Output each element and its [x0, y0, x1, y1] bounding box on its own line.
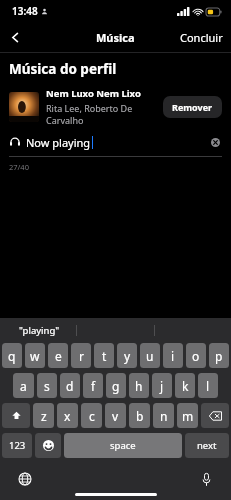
button[interactable]: f — [83, 373, 103, 398]
button[interactable]: x — [57, 403, 78, 428]
button[interactable]: t — [94, 343, 114, 368]
staticText: i — [171, 348, 175, 364]
staticText: z — [41, 408, 47, 424]
button[interactable]: Voice input — [197, 470, 215, 488]
staticText: p — [215, 348, 223, 364]
button[interactable]: z — [33, 403, 54, 428]
button[interactable]: c — [81, 403, 102, 428]
staticText: f — [91, 378, 96, 394]
staticText: c — [89, 408, 95, 424]
button[interactable]: g — [106, 373, 126, 398]
button[interactable]: m — [177, 403, 198, 428]
button[interactable]: a — [13, 373, 34, 398]
staticText: Rita Lee, Roberto De Carvalho — [46, 102, 158, 126]
button[interactable]: d — [60, 373, 80, 398]
staticText: Now playing — [26, 135, 91, 150]
staticText: Nem Luxo Nem Lixo — [46, 87, 141, 100]
button[interactable]: b — [129, 403, 150, 428]
staticText: x — [64, 408, 71, 424]
button[interactable]: r — [71, 343, 91, 368]
staticText: g — [112, 378, 120, 394]
staticText: v — [112, 408, 119, 424]
button[interactable]: i — [163, 343, 183, 368]
staticText: 13:48 — [12, 4, 38, 18]
staticText: r — [79, 348, 84, 364]
button[interactable]: n — [153, 403, 174, 428]
staticText: b — [136, 408, 144, 424]
button[interactable]: space — [64, 433, 182, 458]
button[interactable]: u — [140, 343, 160, 368]
staticText: o — [192, 348, 200, 364]
button[interactable]: Back — [0, 22, 30, 52]
staticText: Música do perfil — [9, 60, 117, 78]
staticText: 123 — [9, 439, 26, 452]
staticText: space — [110, 439, 136, 452]
button[interactable]: Backspace — [201, 403, 229, 428]
staticText: Concluir — [180, 30, 223, 45]
button[interactable]: k — [175, 373, 195, 398]
staticText: e — [55, 348, 62, 364]
staticText: l — [206, 378, 210, 394]
button[interactable]: w — [25, 343, 45, 368]
staticText: "playing" — [19, 324, 60, 337]
button[interactable]: l — [198, 373, 218, 398]
staticText: j — [160, 378, 164, 394]
staticText: h — [135, 378, 143, 394]
staticText: a — [20, 378, 27, 394]
staticText: n — [160, 408, 168, 424]
button[interactable]: Nem Luxo Nem Lixo — [9, 87, 222, 126]
staticText: d — [66, 378, 74, 394]
staticText: y — [124, 348, 131, 364]
staticText: s — [44, 378, 50, 394]
staticText: k — [182, 378, 189, 394]
button[interactable]: Emoji — [35, 433, 61, 458]
button[interactable]: v — [105, 403, 126, 428]
button[interactable]: y — [117, 343, 137, 368]
button[interactable]: Clear text — [208, 135, 222, 149]
button[interactable]: p — [209, 343, 229, 368]
staticText: q — [8, 348, 16, 364]
staticText: t — [102, 348, 107, 364]
button[interactable]: j — [152, 373, 172, 398]
button[interactable]: Concluir — [180, 30, 223, 45]
staticText: m — [182, 408, 194, 424]
staticText: w — [30, 348, 40, 364]
staticText: u — [146, 348, 154, 364]
staticText: 27/40 — [9, 162, 29, 172]
button[interactable]: h — [129, 373, 149, 398]
button[interactable]: 123 — [2, 433, 32, 458]
button[interactable]: Change keyboard language — [16, 470, 34, 488]
button[interactable]: e — [48, 343, 68, 368]
button[interactable]: q — [2, 343, 22, 368]
staticText: Remover — [172, 101, 213, 113]
staticText: Música — [96, 30, 135, 45]
button[interactable]: Remover — [163, 96, 222, 118]
button[interactable]: Shift — [2, 403, 30, 428]
button[interactable]: o — [186, 343, 206, 368]
staticText: next — [197, 439, 217, 452]
button[interactable]: next — [185, 433, 229, 458]
button[interactable]: s — [37, 373, 57, 398]
